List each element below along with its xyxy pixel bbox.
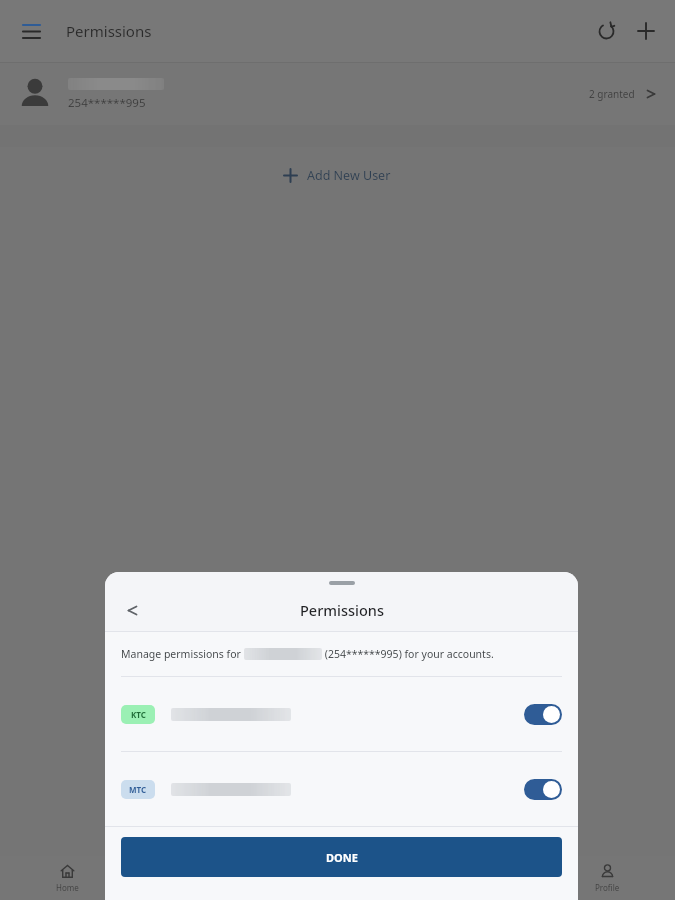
button[interactable]: Toggle permission: [524, 704, 562, 725]
staticText: Permissions: [300, 600, 384, 620]
staticText: KTC: [131, 709, 146, 720]
button[interactable]: Back: [117, 595, 147, 625]
staticText: Add New User: [307, 167, 391, 184]
button[interactable]: Home: [0, 856, 135, 900]
button[interactable]: Add: [629, 14, 663, 48]
button[interactable]: Toggle permission: [524, 779, 562, 800]
staticText: 2 granted: [589, 87, 635, 101]
staticText: Home: [56, 882, 79, 893]
staticText: MTC: [129, 784, 147, 795]
button[interactable]: 254******995: [0, 63, 675, 125]
staticText: (254******995) for your accounts.: [322, 647, 494, 661]
button[interactable]: KTC: [105, 677, 578, 751]
button[interactable]: Menu: [18, 18, 44, 44]
button[interactable]: Refresh: [589, 14, 623, 48]
button[interactable]: DONE: [121, 837, 562, 877]
staticText: DONE: [326, 850, 358, 865]
staticText: 254******995: [68, 95, 146, 111]
staticText: Manage permissions for: [121, 647, 244, 661]
button[interactable]: Add New User: [274, 161, 401, 190]
button[interactable]: Profile: [540, 856, 675, 900]
staticText: Permissions: [66, 21, 152, 41]
staticText: Profile: [595, 882, 620, 893]
button[interactable]: MTC: [105, 752, 578, 826]
